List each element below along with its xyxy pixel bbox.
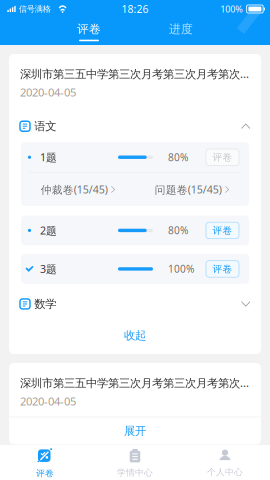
staticText: 2020-04-05 <box>20 84 76 100</box>
button[interactable]: 评卷 <box>206 149 239 165</box>
staticText: 数学 <box>34 297 56 311</box>
button[interactable]: 进度 <box>137 16 225 47</box>
staticText: 展开 <box>124 424 146 438</box>
button[interactable]: 个人中心 <box>180 444 270 480</box>
staticText: 深圳市第三五中学第三次月考第三次月考第次月考第三次月考 <box>20 375 250 390</box>
staticText: 18:26 <box>121 2 148 16</box>
staticText: 3题 <box>40 262 57 276</box>
staticText: 学情中心 <box>117 467 153 478</box>
button[interactable]: 评卷 <box>206 261 239 277</box>
button[interactable]: 评卷 <box>0 444 90 480</box>
staticText: 1题 <box>40 150 57 164</box>
staticText: 个人中心 <box>207 466 243 478</box>
staticText: 深圳市第三五中学第三次月考第三次月考第次月考第三次月考 <box>20 66 250 81</box>
button[interactable]: 学情中心 <box>90 444 180 480</box>
staticText: 100% <box>220 3 243 15</box>
staticText: 信号满格 <box>19 4 51 14</box>
button[interactable]: 仲裁卷(15/45) <box>21 173 135 206</box>
staticText: 100% <box>168 262 194 276</box>
staticText: 评卷 <box>212 224 232 236</box>
staticText: 问题卷(15/45) <box>155 182 222 197</box>
staticText: 评卷 <box>212 263 232 275</box>
staticText: 进度 <box>169 22 193 36</box>
staticText: 2020-04-05 <box>20 393 76 409</box>
button[interactable]: 数学 <box>9 291 261 317</box>
staticText: 2题 <box>40 223 57 238</box>
button[interactable]: 展开 <box>9 417 261 444</box>
staticText: 评卷 <box>77 22 101 36</box>
staticText: 80% <box>168 223 188 237</box>
staticText: 评卷 <box>36 468 54 479</box>
staticText: 仲裁卷(15/45) <box>41 182 108 197</box>
staticText: 80% <box>168 150 188 164</box>
staticText: 语文 <box>34 119 56 133</box>
staticText: 收起 <box>124 328 146 343</box>
button[interactable]: 评卷 <box>206 222 239 239</box>
button[interactable]: 评卷 <box>45 18 133 45</box>
button[interactable]: 问题卷(15/45) <box>135 173 249 206</box>
staticText: 评卷 <box>212 151 232 163</box>
button[interactable]: 收起 <box>9 317 261 354</box>
button[interactable]: 语文 <box>9 113 261 139</box>
